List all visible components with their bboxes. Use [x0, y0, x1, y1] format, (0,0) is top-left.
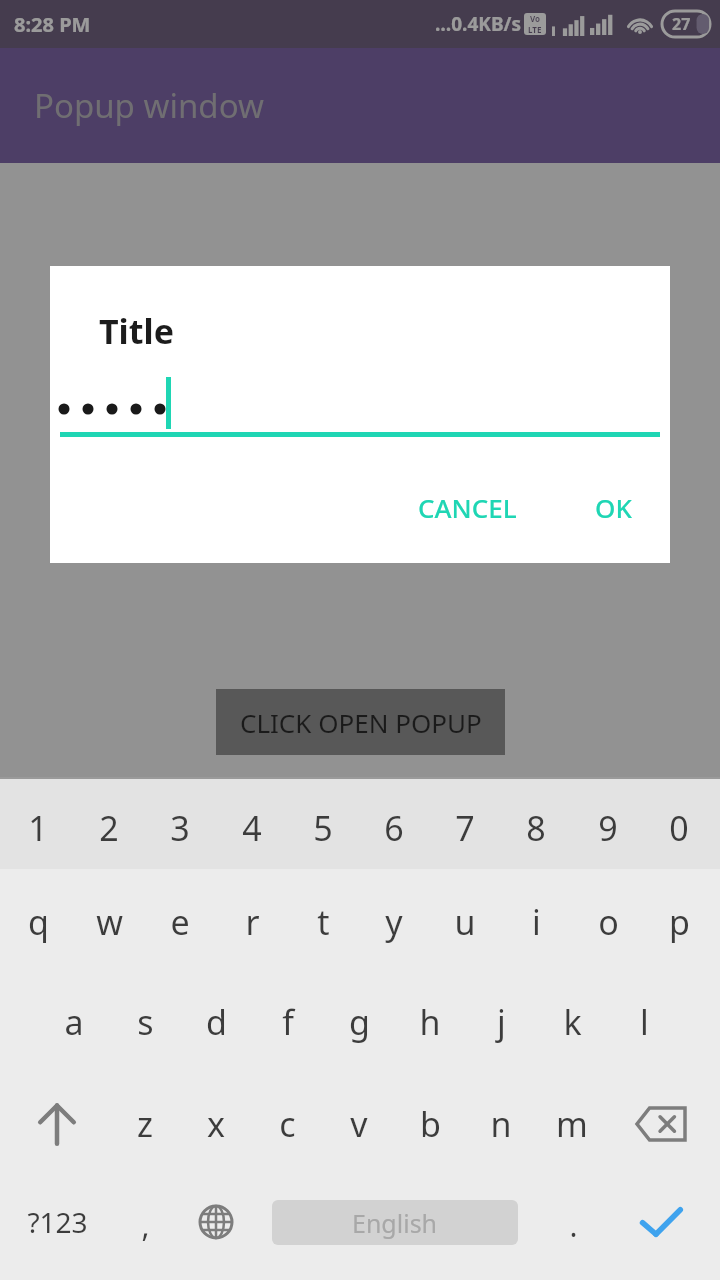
staticText: c [279, 1101, 296, 1147]
staticText: t [317, 899, 330, 945]
staticText: Popup window [34, 83, 264, 128]
button[interactable]: t [287, 889, 359, 955]
staticText: v [350, 1101, 368, 1147]
staticText: i [532, 899, 541, 945]
staticText: . [569, 1205, 578, 1246]
button[interactable]: f [252, 989, 324, 1055]
staticText: 3 [170, 805, 190, 851]
button[interactable]: CANCEL [400, 480, 535, 535]
staticText: 4 [242, 805, 262, 851]
staticText: l [640, 999, 649, 1045]
button[interactable]: ?123 [21, 1189, 93, 1255]
staticText: OK [595, 490, 632, 525]
staticText: 27 [672, 13, 691, 35]
staticText: s [137, 999, 154, 1045]
button[interactable]: h [394, 989, 466, 1055]
button[interactable]: 8 [500, 795, 572, 861]
staticText: CANCEL [418, 490, 517, 525]
button[interactable]: q [2, 889, 74, 955]
button[interactable]: r [216, 889, 288, 955]
staticText: 0 [669, 805, 689, 851]
staticText: g [349, 999, 370, 1045]
staticText: 5 [313, 805, 333, 851]
button[interactable]: v [323, 1091, 395, 1157]
button[interactable]: u [429, 889, 501, 955]
staticText: Title [99, 308, 174, 354]
staticText: x [207, 1101, 225, 1147]
button[interactable]: d [180, 989, 252, 1055]
button[interactable]: . [537, 1192, 609, 1258]
button[interactable]: z [109, 1091, 181, 1157]
staticText: , [141, 1205, 150, 1246]
button[interactable]: o [572, 889, 644, 955]
staticText: p [669, 899, 690, 945]
staticText: Vo [530, 13, 541, 24]
staticText: …0.4KB/s [435, 11, 521, 37]
staticText: f [282, 999, 294, 1045]
button[interactable]: 3 [144, 795, 216, 861]
button[interactable]: Done [625, 1189, 697, 1255]
staticText: k [563, 999, 582, 1045]
staticText: q [28, 899, 49, 945]
staticText: n [490, 1101, 512, 1147]
staticText: 1 [28, 805, 48, 851]
staticText: o [598, 899, 619, 945]
button[interactable]: 6 [358, 795, 430, 861]
staticText: e [170, 899, 190, 945]
staticText: 8 [526, 805, 546, 851]
staticText: z [137, 1101, 153, 1147]
button[interactable]: g [323, 989, 395, 1055]
staticText: 8:28 PM [14, 11, 91, 38]
button[interactable]: Change language [180, 1189, 252, 1255]
button[interactable]: i [500, 889, 572, 955]
button[interactable]: , [109, 1192, 181, 1258]
staticText: 9 [598, 805, 618, 851]
staticText: w [96, 899, 123, 945]
staticText: m [556, 1101, 588, 1147]
button[interactable]: s [109, 989, 181, 1055]
button[interactable]: 0 [643, 795, 715, 861]
button[interactable]: c [251, 1091, 323, 1157]
staticText: 2 [99, 805, 119, 851]
staticText: d [206, 999, 227, 1045]
button[interactable]: 5 [287, 795, 359, 861]
button[interactable]: n [465, 1091, 537, 1157]
staticText: CLICK OPEN POPUP [240, 705, 482, 740]
staticText: j [497, 999, 506, 1045]
staticText: a [64, 999, 84, 1045]
button[interactable]: Backspace [625, 1091, 697, 1157]
staticText: ?123 [27, 1203, 88, 1241]
button[interactable]: a [38, 989, 110, 1055]
staticText: y [385, 899, 403, 945]
button[interactable]: Shift [21, 1091, 93, 1157]
staticText: u [454, 899, 476, 945]
button[interactable]: 2 [73, 795, 145, 861]
staticText: 6 [384, 805, 404, 851]
button[interactable]: x [180, 1091, 252, 1157]
button[interactable]: 4 [216, 795, 288, 861]
button[interactable]: b [394, 1091, 466, 1157]
button[interactable]: w [73, 889, 145, 955]
button[interactable]: j [465, 989, 537, 1055]
button[interactable]: k [536, 989, 608, 1055]
button[interactable]: m [536, 1091, 608, 1157]
button[interactable]: 9 [572, 795, 644, 861]
button[interactable]: 1 [2, 795, 74, 861]
button[interactable]: e [144, 889, 216, 955]
button[interactable] [50, 371, 670, 436]
staticText: r [245, 899, 260, 945]
staticText: h [419, 999, 441, 1045]
button[interactable]: p [643, 889, 715, 955]
button[interactable]: English [272, 1200, 518, 1245]
button[interactable]: l [608, 989, 680, 1055]
button[interactable]: OK [577, 480, 650, 535]
staticText: b [420, 1101, 441, 1147]
button[interactable]: y [358, 889, 430, 955]
staticText: 7 [455, 805, 475, 851]
staticText: English [352, 1206, 438, 1240]
button[interactable]: CLICK OPEN POPUP [216, 689, 505, 755]
staticText: LTE [528, 24, 542, 35]
button[interactable]: 7 [429, 795, 501, 861]
